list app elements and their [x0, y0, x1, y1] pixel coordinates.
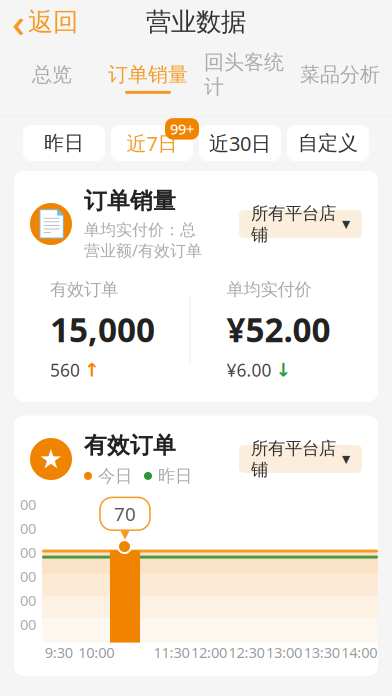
staticText: 560: [50, 358, 80, 381]
staticText: ¥52.00: [226, 307, 330, 351]
staticText: 返回: [28, 6, 78, 37]
staticText: 有效订单: [50, 279, 118, 300]
staticText: 订单销量: [84, 187, 176, 215]
staticText: 15,000: [50, 307, 155, 351]
staticText: 00: [20, 567, 36, 586]
staticText: 00: [20, 615, 36, 634]
staticText: 00: [20, 519, 36, 538]
staticText: 昨日: [44, 131, 84, 155]
staticText: 单均实付价: [226, 279, 311, 300]
staticText: 今日: [98, 465, 132, 487]
staticText: 10:00: [78, 643, 114, 662]
button[interactable]: 自定义: [284, 121, 372, 165]
staticText: ‹: [12, 0, 25, 48]
button[interactable]: 所有平台店铺: [239, 210, 362, 238]
staticText: 12:00: [191, 643, 227, 662]
staticText: ↑: [84, 359, 100, 380]
staticText: 所有平台店铺: [251, 203, 336, 245]
button[interactable]: 总览: [4, 56, 100, 100]
staticText: 12:30: [229, 643, 265, 662]
staticText: ★: [39, 444, 63, 474]
staticText: 昨日: [158, 465, 192, 487]
staticText: 所有平台店铺: [251, 438, 336, 480]
staticText: 单均实付价：总营业额/有效订单: [84, 220, 202, 261]
button[interactable]: 昨日: [20, 121, 108, 165]
staticText: ▼: [120, 527, 129, 541]
button[interactable]: 回头客统计: [196, 44, 292, 112]
staticText: 近7日: [126, 130, 177, 156]
staticText: 有效订单: [84, 431, 176, 459]
staticText: ↓: [275, 359, 291, 380]
button[interactable]: ‹: [0, 0, 90, 44]
button[interactable]: 近30日: [196, 121, 284, 165]
button[interactable]: 订单销量: [100, 56, 196, 100]
staticText: ▼: [342, 453, 350, 465]
staticText: 11:30: [153, 643, 189, 662]
staticText: ▼: [342, 218, 350, 230]
staticText: 9:30: [45, 643, 73, 662]
staticText: 99+: [170, 119, 194, 139]
staticText: 订单销量: [108, 62, 188, 87]
button[interactable]: 菜品分析: [292, 56, 388, 100]
button[interactable]: 近7日: [108, 121, 196, 165]
staticText: 13:30: [304, 643, 340, 662]
staticText: 14:00: [341, 643, 377, 662]
staticText: 00: [20, 495, 36, 514]
staticText: 回头客统计: [204, 50, 284, 99]
staticText: ¥6.00: [226, 358, 271, 381]
staticText: 菜品分析: [300, 62, 380, 87]
staticText: 近30日: [209, 130, 271, 156]
staticText: 13:00: [266, 643, 302, 662]
staticText: 📄: [34, 209, 67, 239]
staticText: 总览: [32, 62, 72, 87]
staticText: 营业数据: [146, 6, 246, 37]
button[interactable]: 所有平台店铺: [239, 445, 362, 473]
staticText: 00: [20, 543, 36, 562]
staticText: 70: [114, 501, 136, 526]
staticText: 00: [20, 591, 36, 610]
staticText: 自定义: [298, 131, 358, 155]
